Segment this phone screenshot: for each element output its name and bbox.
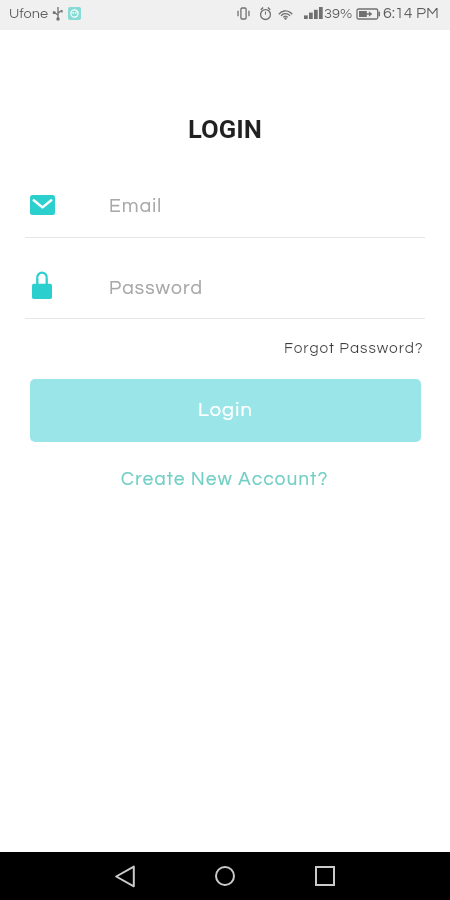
button[interactable]: Password	[25, 271, 425, 318]
staticText: Password	[109, 278, 203, 298]
staticText: Create New Account?	[121, 470, 329, 489]
staticText: 6:14 PM	[383, 5, 440, 21]
button[interactable]: Forgot Password?	[282, 336, 426, 360]
button[interactable]: Recents	[301, 852, 349, 900]
staticText: Forgot Password?	[284, 340, 424, 356]
staticText: 39%	[324, 6, 353, 21]
staticText: Ufone	[9, 6, 49, 21]
staticText: Email	[109, 196, 163, 216]
button[interactable]: Back	[101, 852, 149, 900]
button[interactable]: Email	[25, 187, 425, 237]
button[interactable]: Home	[201, 852, 249, 900]
staticText: Login	[198, 400, 254, 421]
button[interactable]: Login	[30, 379, 421, 442]
staticText: LOGIN	[0, 114, 450, 144]
button[interactable]: Create New Account?	[117, 466, 333, 493]
